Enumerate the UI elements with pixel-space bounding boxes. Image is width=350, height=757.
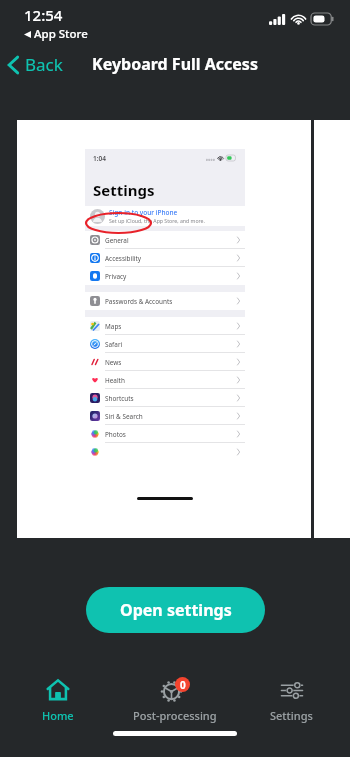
button[interactable]: Accessibility — [85, 249, 245, 267]
button[interactable]: Shortcuts — [85, 389, 245, 407]
button[interactable]: Safari — [85, 335, 245, 353]
button[interactable] — [85, 443, 245, 461]
staticText: Passwords & Accounts — [105, 297, 173, 306]
staticText: Post-processing — [133, 708, 217, 723]
staticText: Shortcuts — [105, 394, 134, 403]
button[interactable]: Siri & Search — [85, 407, 245, 425]
staticText: 12:54 — [24, 5, 63, 25]
staticText: Sign in to your iPhone — [109, 208, 178, 217]
staticText: Health — [105, 376, 125, 385]
staticText: Open settings — [120, 599, 232, 621]
staticText: Accessibility — [105, 254, 142, 263]
button[interactable]: Health — [85, 371, 245, 389]
staticText: News — [105, 358, 122, 367]
other: Home — [46, 678, 70, 702]
staticText: Settings — [93, 180, 155, 200]
other: Post-processing — [160, 677, 190, 703]
staticText: Safari — [105, 340, 123, 349]
staticText: General — [105, 236, 129, 245]
button[interactable]: Post-processing — [116, 669, 233, 731]
button[interactable]: 1:04 — [17, 120, 311, 538]
staticText: 1:04 — [93, 154, 106, 163]
button[interactable]: Sign in to your iPhone — [85, 206, 245, 226]
staticText: Siri & Search — [105, 412, 143, 421]
button[interactable]: Settings — [233, 669, 350, 731]
button[interactable]: Back — [0, 47, 73, 82]
button[interactable]: Photos — [85, 425, 245, 443]
staticText: Keyboard Full Access — [92, 53, 258, 75]
staticText: Maps — [105, 322, 122, 331]
staticText: Set up iCloud, the App Store, and more. — [109, 217, 205, 224]
staticText: 0 — [180, 678, 186, 692]
button[interactable]: Passwords & Accounts — [85, 292, 245, 310]
button[interactable]: Home — [0, 669, 116, 731]
button[interactable]: Open settings — [86, 587, 265, 633]
staticText: Home — [42, 708, 74, 723]
button[interactable]: Maps — [85, 317, 245, 335]
staticText: Privacy — [105, 272, 127, 281]
staticText: App Store — [34, 26, 88, 42]
other: Settings — [280, 681, 304, 700]
button[interactable]: General — [85, 231, 245, 249]
staticText: Back — [25, 53, 63, 76]
button[interactable]: News — [85, 353, 245, 371]
staticText: Settings — [270, 708, 313, 723]
staticText: Photos — [105, 430, 126, 439]
button[interactable]: Privacy — [85, 267, 245, 285]
